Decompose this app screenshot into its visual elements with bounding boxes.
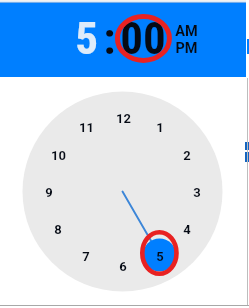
button[interactable]: 5 <box>148 247 172 265</box>
button[interactable]: 7 <box>74 247 98 265</box>
staticText: 7 <box>82 249 90 264</box>
staticText: 11 <box>79 120 94 135</box>
button[interactable]: 9 <box>37 183 61 201</box>
staticText: 5 <box>75 12 98 62</box>
button[interactable]: 5 <box>69 12 103 62</box>
staticText: 5 <box>156 249 164 264</box>
button[interactable]: PM <box>169 40 203 56</box>
staticText: 12 <box>116 111 131 126</box>
staticText: 4 <box>183 222 191 237</box>
staticText: 1 <box>156 120 164 135</box>
button[interactable]: 12 <box>111 109 135 127</box>
staticText: PM <box>175 40 198 56</box>
button[interactable]: 00 <box>116 12 170 62</box>
button[interactable]: 3 <box>185 183 209 201</box>
staticText: 00 <box>120 12 166 62</box>
staticText: 9 <box>45 185 53 200</box>
staticText: AM <box>175 23 198 39</box>
button[interactable]: 6 <box>111 257 135 275</box>
staticText: 2 <box>183 148 191 163</box>
staticText: 8 <box>54 222 62 237</box>
button[interactable]: AM <box>169 23 203 39</box>
button[interactable]: 1 <box>148 118 172 136</box>
button[interactable]: 4 <box>175 220 199 238</box>
staticText: 3 <box>193 185 201 200</box>
button[interactable]: 2 <box>175 146 199 164</box>
button[interactable]: 11 <box>74 118 98 136</box>
staticText: 10 <box>51 148 66 163</box>
staticText: 6 <box>119 259 127 274</box>
staticText: : <box>103 12 116 62</box>
button[interactable]: 10 <box>46 146 70 164</box>
button[interactable]: 8 <box>46 220 70 238</box>
